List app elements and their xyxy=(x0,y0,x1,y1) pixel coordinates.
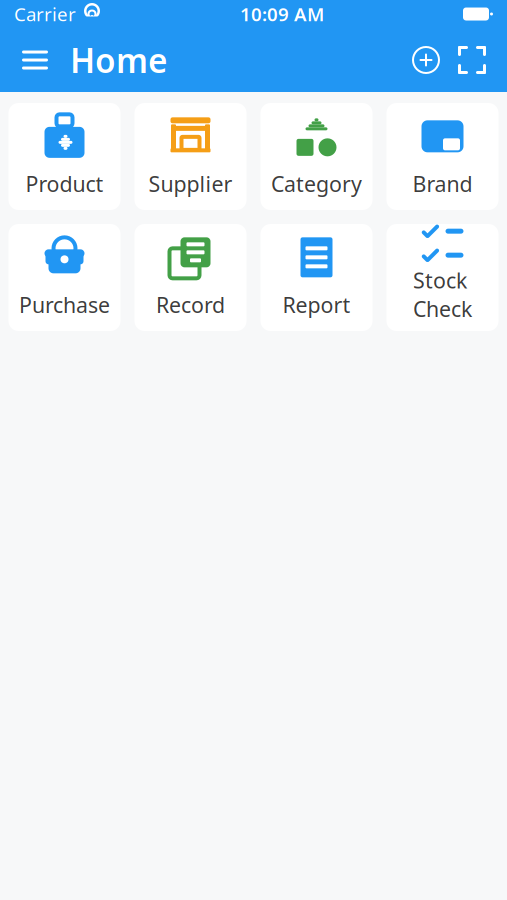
button[interactable]: Supplier xyxy=(134,103,246,210)
button[interactable]: Category xyxy=(260,103,372,210)
staticText: Carrier xyxy=(14,2,76,26)
staticText: Product xyxy=(25,170,103,198)
button[interactable]: Stock Check xyxy=(386,224,498,331)
button[interactable]: Purchase xyxy=(8,224,120,331)
staticText: Category xyxy=(271,170,362,198)
staticText: Record xyxy=(156,291,225,319)
staticText: Report xyxy=(282,291,350,319)
staticText: Purchase xyxy=(19,291,110,319)
staticText: Supplier xyxy=(148,170,232,198)
staticText: Brand xyxy=(412,170,472,198)
button[interactable]: Add xyxy=(403,37,449,83)
button[interactable]: Scan xyxy=(449,37,495,83)
staticText: Stock Check xyxy=(413,266,472,323)
button[interactable]: Record xyxy=(134,224,246,331)
button[interactable]: Menu xyxy=(12,37,58,83)
button[interactable]: Report xyxy=(260,224,372,331)
staticText: 10:09 AM xyxy=(240,2,324,26)
button[interactable]: Product xyxy=(8,103,120,210)
button[interactable]: Brand xyxy=(386,103,498,210)
staticText: Home xyxy=(70,38,168,82)
